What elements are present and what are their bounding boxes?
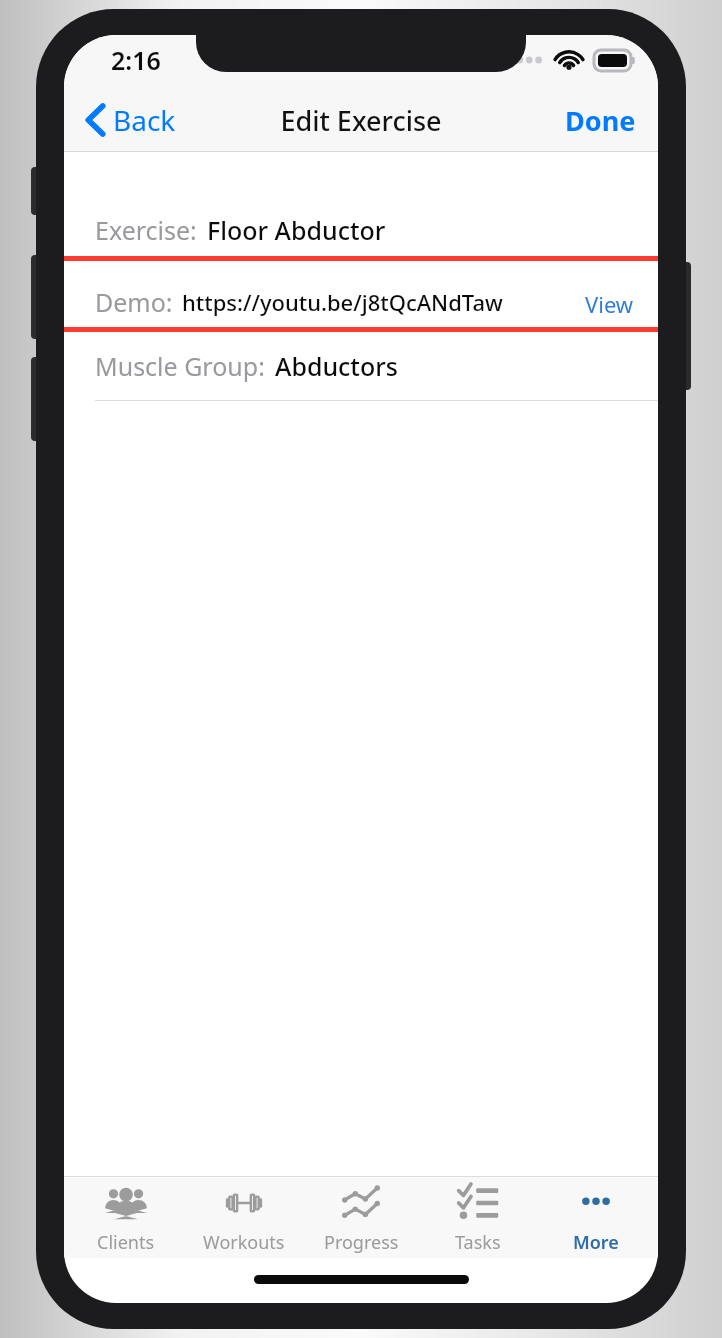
staticText: Abductors [275, 349, 398, 383]
staticText: Clients [97, 1230, 155, 1255]
button[interactable]: More [541, 1177, 651, 1258]
button[interactable]: Done [553, 92, 648, 149]
staticText: Progress [324, 1230, 399, 1255]
button[interactable]: Back [78, 93, 184, 147]
staticText: Muscle Group: [95, 349, 265, 383]
button[interactable]: Demo: [64, 256, 658, 332]
button[interactable]: Progress [306, 1177, 416, 1258]
staticText: Tasks [455, 1230, 501, 1255]
button[interactable]: View [581, 289, 638, 319]
staticText: Edit Exercise [280, 102, 442, 139]
button[interactable]: Exercise: [64, 204, 658, 256]
staticText: More [573, 1230, 619, 1255]
staticText: https://youtu.be/j8tQcANdTaw [182, 287, 503, 317]
staticText: Workouts [203, 1230, 285, 1255]
staticText: Exercise: [95, 213, 197, 247]
button[interactable]: Muscle Group: [64, 332, 658, 400]
staticText: Done [565, 102, 636, 139]
staticText: Demo: [95, 285, 173, 319]
staticText: View [585, 289, 634, 319]
button[interactable]: Workouts [189, 1177, 299, 1258]
button[interactable]: Tasks [423, 1177, 533, 1258]
button[interactable]: Clients [71, 1177, 181, 1258]
staticText: Floor Abductor [207, 213, 386, 247]
staticText: Back [113, 101, 176, 139]
staticText: 2:16 [111, 43, 161, 77]
